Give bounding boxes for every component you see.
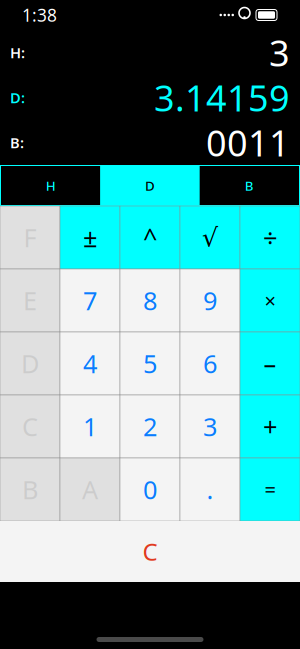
staticText: H: [46, 177, 56, 194]
button[interactable]: A: [60, 458, 120, 521]
staticText: =: [264, 476, 275, 503]
staticText: D: [21, 347, 39, 380]
staticText: 0011: [206, 119, 290, 166]
staticText: B:: [10, 133, 24, 152]
staticText: .: [206, 473, 213, 506]
button[interactable]: 7: [60, 269, 120, 332]
staticText: ^: [143, 221, 157, 254]
button[interactable]: D: [0, 332, 60, 395]
staticText: 1:38: [22, 3, 57, 26]
staticText: –: [263, 347, 276, 380]
button[interactable]: 8: [120, 269, 180, 332]
staticText: 4: [83, 347, 97, 380]
button[interactable]: +: [240, 395, 300, 458]
staticText: √: [202, 223, 218, 252]
staticText: 1: [83, 410, 97, 443]
button[interactable]: F: [0, 206, 60, 269]
button[interactable]: 9: [180, 269, 240, 332]
staticText: ÷: [263, 221, 277, 254]
staticText: 2: [143, 410, 157, 443]
staticText: 5: [143, 347, 157, 380]
staticText: D: [145, 177, 155, 194]
staticText: 9: [203, 284, 217, 317]
button[interactable]: H: [1, 166, 100, 205]
staticText: 3: [203, 410, 217, 443]
button[interactable]: 1: [60, 395, 120, 458]
staticText: 3: [269, 29, 290, 76]
staticText: ±: [83, 221, 97, 254]
button[interactable]: 0: [120, 458, 180, 521]
staticText: D:: [10, 88, 25, 107]
staticText: A: [82, 473, 98, 506]
button[interactable]: 5: [120, 332, 180, 395]
button[interactable]: C: [0, 521, 300, 582]
staticText: B: [22, 473, 38, 506]
button[interactable]: 3: [180, 395, 240, 458]
button[interactable]: 2: [120, 395, 180, 458]
staticText: 0: [143, 473, 157, 506]
staticText: B: [245, 177, 254, 194]
button[interactable]: B: [200, 166, 299, 205]
button[interactable]: =: [240, 458, 300, 521]
button[interactable]: ÷: [240, 206, 300, 269]
button[interactable]: B: [0, 458, 60, 521]
staticText: E: [23, 284, 37, 317]
button[interactable]: C: [0, 395, 60, 458]
button[interactable]: 4: [60, 332, 120, 395]
staticText: +: [263, 410, 277, 443]
button[interactable]: E: [0, 269, 60, 332]
staticText: C: [22, 410, 38, 443]
button[interactable]: D: [100, 166, 200, 205]
button[interactable]: √: [180, 206, 240, 269]
button[interactable]: ×: [240, 269, 300, 332]
staticText: 8: [143, 284, 157, 317]
staticText: 3.14159: [154, 74, 290, 121]
staticText: 7: [83, 284, 97, 317]
button[interactable]: ±: [60, 206, 120, 269]
staticText: F: [23, 221, 36, 254]
staticText: ×: [264, 287, 275, 314]
staticText: C: [142, 536, 157, 567]
button[interactable]: 6: [180, 332, 240, 395]
button[interactable]: ^: [120, 206, 180, 269]
button[interactable]: .: [180, 458, 240, 521]
staticText: 6: [203, 347, 217, 380]
staticText: H:: [10, 43, 25, 62]
button[interactable]: –: [240, 332, 300, 395]
